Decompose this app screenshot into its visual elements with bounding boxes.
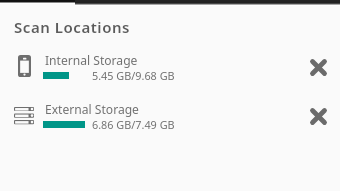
button[interactable]: Internal Storage [0, 48, 340, 84]
staticText: Scan Locations [14, 17, 131, 37]
button[interactable]: Remove this scan location [300, 97, 336, 133]
staticText: 5.45 GB/9.68 GB [92, 68, 175, 83]
staticText: 6.86 GB/7.49 GB [92, 117, 175, 132]
staticText: Internal Storage [45, 52, 138, 68]
staticText: External Storage [45, 101, 139, 117]
button[interactable]: Remove this scan location [300, 48, 336, 84]
button[interactable]: External Storage [0, 97, 340, 133]
